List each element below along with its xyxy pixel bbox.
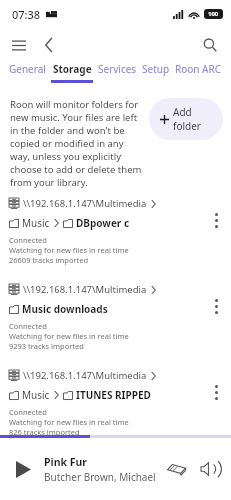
- staticText: Watching for new files in real time: [9, 417, 129, 427]
- button[interactable]: \\192.168.1.147\Multimedia: [0, 367, 231, 439]
- button[interactable]: Add folder: [149, 98, 223, 140]
- staticText: Connected: [9, 235, 47, 245]
- staticText: Add folder: [173, 105, 212, 133]
- staticText: Music downloads: [22, 302, 108, 316]
- staticText: Music: [22, 216, 50, 230]
- staticText: \\192.168.1.147\Multimedia: [23, 197, 147, 210]
- button[interactable]: Play: [10, 456, 36, 482]
- staticText: Services: [98, 62, 137, 76]
- staticText: \\192.168.1.147\Multimedia: [23, 283, 147, 296]
- staticText: 9293 tracks imported: [9, 341, 84, 351]
- button[interactable]: Output device: [163, 456, 189, 482]
- button[interactable]: More options: [205, 369, 227, 415]
- staticText: Roon ARC: [175, 62, 222, 76]
- staticText: General: [9, 62, 46, 76]
- button[interactable]: General: [9, 62, 46, 83]
- staticText: DBpower c: [76, 216, 130, 230]
- staticText: 07:38: [12, 7, 41, 22]
- staticText: Storage: [53, 62, 92, 76]
- staticText: ITUNES RIPPED: [76, 388, 151, 402]
- button[interactable]: More options: [205, 283, 227, 329]
- staticText: 26609 tracks imported: [9, 255, 89, 265]
- staticText: Connected: [9, 321, 47, 331]
- staticText: 826 tracks imported: [9, 427, 80, 437]
- button[interactable]: Menu: [6, 32, 32, 58]
- staticText: Watching for new files in real time: [9, 331, 129, 341]
- button[interactable]: Setup: [142, 62, 170, 83]
- button[interactable]: More options: [205, 197, 227, 243]
- staticText: Watching for new files in real time: [9, 245, 129, 255]
- button[interactable]: \\192.168.1.147\Multimedia: [0, 281, 231, 353]
- button[interactable]: Services: [98, 62, 137, 83]
- staticText: Pink Fur: [44, 455, 88, 469]
- staticText: Roon will monitor folders for new music.…: [10, 98, 143, 189]
- button[interactable]: Volume: [195, 456, 221, 482]
- staticText: \\192.168.1.147\Multimedia: [23, 369, 147, 382]
- staticText: 100: [208, 10, 219, 18]
- staticText: Butcher Brown, Michael Mil: [44, 470, 163, 484]
- button[interactable]: Roon ARC: [175, 62, 222, 83]
- button[interactable]: Back: [36, 32, 62, 58]
- staticText: Setup: [142, 62, 170, 76]
- button[interactable]: Search: [197, 32, 223, 58]
- staticText: Connected: [9, 407, 47, 417]
- staticText: Music: [22, 388, 50, 402]
- button[interactable]: Storage: [51, 62, 93, 83]
- button[interactable]: \\192.168.1.147\Multimedia: [0, 195, 231, 267]
